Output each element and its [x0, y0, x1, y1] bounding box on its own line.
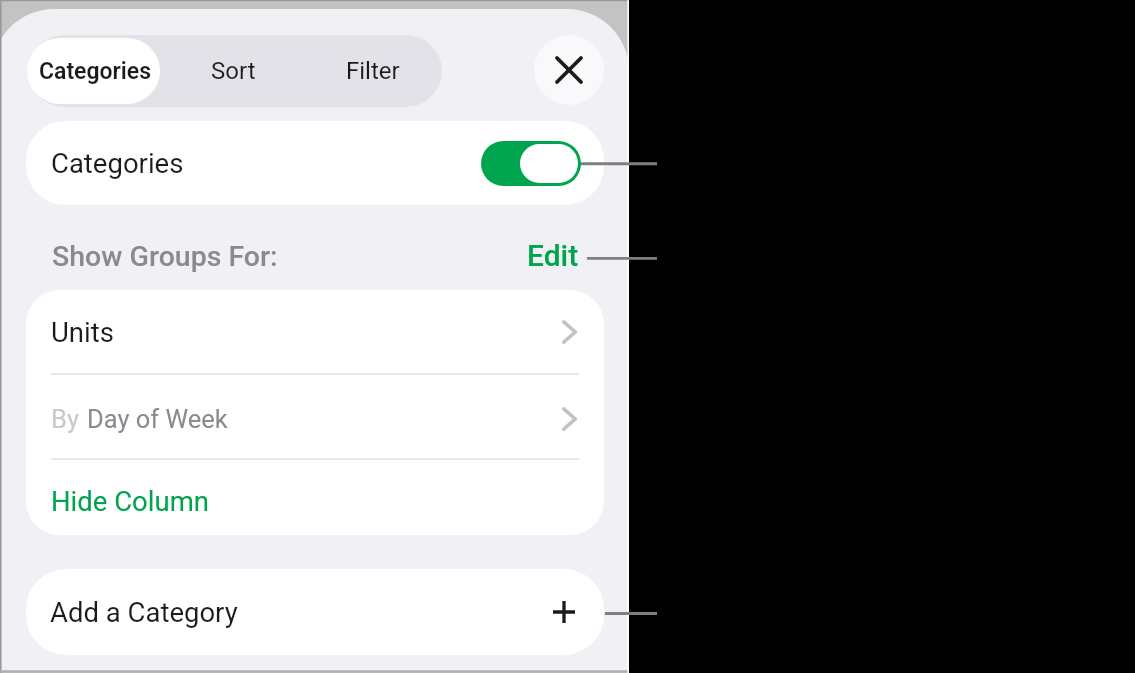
staticText: Edit — [527, 238, 579, 273]
button[interactable]: Add a Category — [26, 569, 604, 655]
button[interactable]: Sort — [163, 38, 303, 104]
button[interactable]: Units — [26, 290, 604, 374]
button[interactable]: Hide Column — [26, 467, 604, 535]
staticText: Categories — [39, 58, 152, 85]
button[interactable]: Filter — [303, 38, 442, 104]
staticText: Units — [51, 316, 562, 348]
button[interactable]: Categories — [26, 121, 604, 205]
button[interactable]: Categories toggle — [481, 141, 581, 186]
staticText: Filter — [346, 57, 400, 85]
staticText: Sort — [211, 57, 256, 85]
button[interactable]: Categories — [27, 38, 160, 104]
button[interactable]: Edit — [511, 228, 595, 282]
staticText: Show Groups For: — [52, 240, 278, 273]
button[interactable]: By — [26, 377, 604, 461]
button[interactable]: Add — [533, 581, 595, 643]
button[interactable]: Close — [534, 35, 604, 105]
staticText: Day of Week — [87, 404, 228, 434]
staticText: Add a Category — [50, 596, 238, 628]
staticText: By — [51, 404, 79, 434]
staticText: Categories — [51, 147, 184, 179]
staticText: Hide Column — [51, 485, 209, 517]
